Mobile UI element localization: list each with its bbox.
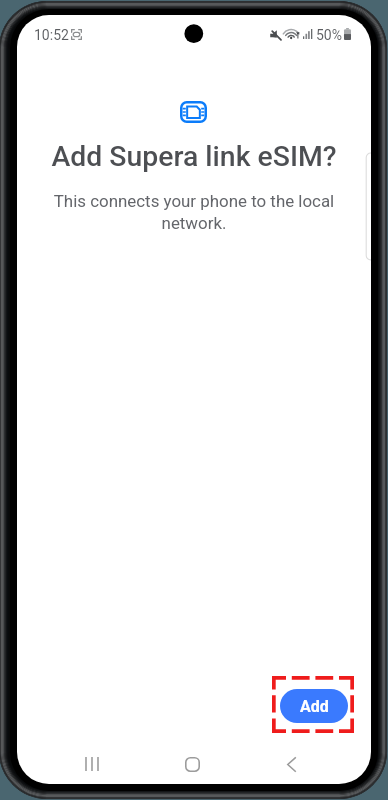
button[interactable]: Back: [269, 744, 313, 784]
staticText: This connects your phone to the local ne…: [47, 191, 341, 233]
button[interactable]: Recents: [70, 744, 114, 784]
staticText: Add Supera link eSIM?: [51, 140, 337, 173]
button[interactable]: Home: [170, 744, 214, 784]
staticText: 50%: [316, 27, 342, 43]
button[interactable]: Add: [280, 689, 348, 723]
staticText: 10:52: [34, 27, 69, 43]
staticText: Add: [300, 697, 329, 716]
